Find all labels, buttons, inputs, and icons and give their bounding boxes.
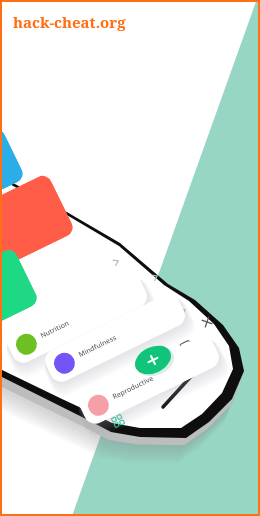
button[interactable]: Mindfulness <box>41 290 189 386</box>
staticText: Reproductive <box>111 373 156 402</box>
staticText: hack-cheat.org <box>13 12 126 32</box>
button[interactable]: Nutrition <box>3 271 151 367</box>
button[interactable]: Add <box>134 347 172 373</box>
button[interactable]: Card <box>0 247 40 335</box>
staticText: Mindfulness <box>77 333 119 360</box>
staticText: Nutrition <box>39 318 71 341</box>
button[interactable]: Card <box>0 172 76 269</box>
button[interactable]: Reproductive <box>75 332 223 428</box>
button[interactable]: Card <box>0 126 26 207</box>
